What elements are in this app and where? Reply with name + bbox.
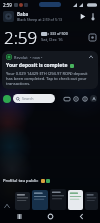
button[interactable]: Account — [90, 95, 97, 102]
staticText: 333 of 500 — [50, 31, 68, 36]
button[interactable]: Share — [3, 202, 11, 210]
staticText: • now • — [30, 55, 43, 60]
button[interactable]: Settings — [72, 95, 79, 102]
button[interactable]: Photos — [81, 95, 88, 102]
button[interactable]: Recents — [7, 210, 31, 223]
button[interactable]: Back — [69, 210, 93, 223]
button[interactable]: Baba — [0, 9, 100, 23]
staticText: Search — [22, 96, 34, 101]
button[interactable]: Camera — [89, 34, 96, 41]
button[interactable]: Recent app — [50, 189, 66, 210]
button[interactable]: Recent app — [32, 190, 48, 210]
button[interactable]: Recent app — [68, 190, 83, 210]
button[interactable]: Files — [63, 95, 70, 102]
staticText: Sat, Dec 16 — [41, 37, 63, 43]
staticText: Baba — [17, 11, 29, 17]
button[interactable]: Next track — [89, 12, 97, 20]
staticText: 2:59 — [3, 2, 12, 8]
staticText: Revolut — [14, 55, 28, 60]
button[interactable]: Collapse — [88, 54, 94, 60]
button[interactable]: Recent app — [15, 192, 30, 210]
staticText: Profilul tau public — [3, 178, 39, 184]
button[interactable]: Home — [38, 210, 62, 223]
button[interactable]: Revolut — [2, 51, 98, 89]
button[interactable]: Recent app — [85, 192, 98, 210]
staticText: Your deposit is complete — [6, 62, 68, 69]
staticText: Black Sheep at 2:59 of 5:13 — [17, 17, 63, 22]
button[interactable]: Search — [13, 94, 55, 103]
button[interactable]: Assistant — [3, 95, 11, 103]
staticText: Your 0.029 14429 ETH (294.97 RON) deposi… — [6, 71, 94, 86]
staticText: 2:59 — [4, 26, 38, 48]
button[interactable]: Play — [78, 12, 87, 21]
